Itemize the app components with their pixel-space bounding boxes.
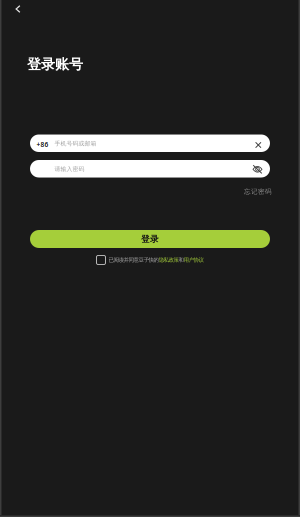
button[interactable]: 忘记密码 <box>244 187 272 196</box>
button[interactable]: Agree to the terms <box>96 255 108 264</box>
staticText: 用户协议 <box>183 257 203 263</box>
staticText: 和 <box>178 257 183 263</box>
button[interactable]: 用户协议 <box>183 257 203 263</box>
button[interactable]: Clear text <box>251 138 265 152</box>
staticText: 手机号码或邮箱 <box>54 140 96 147</box>
button[interactable]: 登录 <box>30 230 270 248</box>
button[interactable]: Toggle password visibility <box>250 162 264 176</box>
staticText: 登录 <box>141 233 159 244</box>
staticText: 隐私政策 <box>158 257 178 263</box>
staticText: 登录账号 <box>27 55 83 73</box>
button[interactable]: Back <box>5 0 31 20</box>
staticText: 忘记密码 <box>244 187 272 196</box>
staticText: 已阅读并同意豆子快的 <box>108 257 158 263</box>
button[interactable]: 隐私政策 <box>158 257 178 263</box>
staticText: +86 <box>37 140 49 149</box>
staticText: 请输入密码 <box>54 165 84 173</box>
